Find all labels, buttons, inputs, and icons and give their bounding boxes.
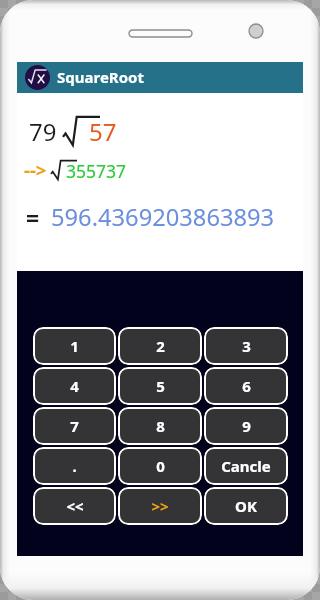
staticText: 8 [156, 416, 165, 436]
button[interactable]: 6 [204, 367, 288, 405]
staticText: SquareRoot [57, 67, 144, 87]
staticText: 79 [29, 115, 57, 148]
button[interactable]: 0 [118, 447, 202, 485]
staticText: << [66, 496, 84, 516]
staticText: 7 [70, 416, 79, 436]
button[interactable]: 2 [118, 327, 202, 365]
staticText: Cancle [221, 456, 271, 476]
other: SquareRoot app icon [25, 65, 50, 90]
staticText: 355737 [66, 159, 127, 183]
button[interactable]: 4 [33, 367, 116, 405]
staticText: 4 [70, 376, 79, 396]
staticText: . [72, 456, 77, 476]
staticText: 596.4369203863893 [51, 201, 275, 233]
button[interactable]: 3 [204, 327, 288, 365]
button[interactable]: << [33, 487, 116, 525]
staticText: 9 [242, 416, 251, 436]
staticText: 6 [242, 376, 251, 396]
staticText: 0 [156, 456, 165, 476]
staticText: --> [24, 157, 47, 182]
staticText: 1 [70, 336, 79, 356]
button[interactable]: OK [204, 487, 288, 525]
button[interactable]: 5 [118, 367, 202, 405]
staticText: = [26, 202, 40, 233]
button[interactable]: Cancle [204, 447, 288, 485]
button[interactable]: 9 [204, 407, 288, 445]
staticText: OK [235, 496, 257, 516]
button[interactable]: 7 [33, 407, 116, 445]
staticText: 57 [89, 115, 117, 148]
button[interactable]: >> [118, 487, 202, 525]
staticText: >> [151, 496, 169, 516]
button[interactable]: SquareRoot app icon [17, 62, 303, 93]
button[interactable]: . [33, 447, 116, 485]
staticText: 2 [156, 336, 165, 356]
staticText: 3 [242, 336, 251, 356]
button[interactable]: 1 [33, 327, 116, 365]
button[interactable]: 8 [118, 407, 202, 445]
staticText: 5 [156, 376, 165, 396]
